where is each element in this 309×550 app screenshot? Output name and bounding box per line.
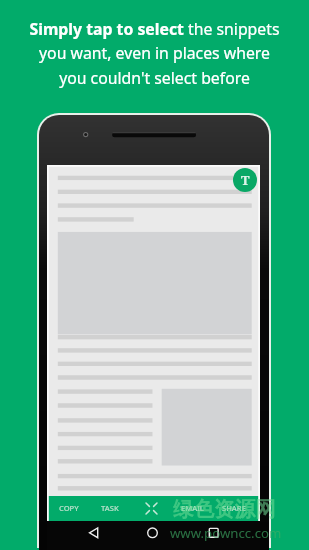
- button[interactable]: EMAIL: [173, 496, 211, 520]
- button[interactable]: TASK: [91, 496, 129, 520]
- staticText: Simply tap to select the snippets you wa…: [29, 18, 280, 89]
- button[interactable]: Text selection tool: [233, 168, 257, 192]
- staticText: TASK: [101, 503, 119, 513]
- staticText: 绿色资源网: [173, 496, 276, 522]
- staticText: EMAIL: [181, 503, 204, 513]
- staticText: COPY: [59, 503, 79, 513]
- button[interactable]: Expand selection: [140, 497, 162, 519]
- button[interactable]: SHARE: [215, 496, 253, 520]
- button[interactable]: COPY: [50, 496, 88, 520]
- staticText: SHARE: [222, 503, 246, 513]
- staticText: T: [241, 171, 250, 189]
- staticText: www.powncc.com: [170, 524, 282, 542]
